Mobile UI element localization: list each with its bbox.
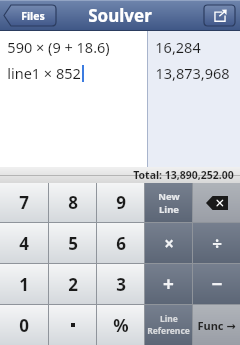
staticText: +	[163, 271, 174, 297]
button[interactable]: Func →	[193, 305, 240, 345]
staticText: 8	[68, 191, 78, 214]
button[interactable]: Backspace	[193, 183, 240, 222]
staticText: %	[113, 314, 129, 337]
button[interactable]: 0	[0, 305, 48, 345]
staticText: ÷	[212, 232, 222, 255]
button[interactable]: 9	[97, 183, 144, 222]
staticText: 1	[19, 273, 29, 296]
button[interactable]: 3	[97, 264, 144, 304]
button[interactable]: 7	[0, 183, 48, 222]
staticText: New	[158, 190, 180, 203]
staticText: ×	[164, 232, 174, 255]
button[interactable]: 4	[0, 223, 48, 263]
staticText: 590 × (9 + 18.6)	[7, 37, 110, 57]
button[interactable]: 2	[49, 264, 96, 304]
button[interactable]: Minus	[193, 264, 240, 304]
button[interactable]: Multiply	[145, 223, 192, 263]
staticText: 16,284	[155, 37, 201, 57]
staticText: 9	[116, 191, 126, 214]
staticText: Line	[159, 203, 179, 216]
staticText: Files	[21, 9, 45, 23]
staticText: 7	[19, 191, 29, 214]
staticText: −	[211, 271, 223, 297]
staticText: Total: 13,890,252.00	[133, 168, 234, 182]
button[interactable]: 8	[49, 183, 96, 222]
button[interactable]: Share	[204, 5, 235, 26]
button[interactable]: Plus	[145, 264, 192, 304]
button[interactable]: %	[97, 305, 144, 345]
staticText: Line	[160, 313, 178, 325]
staticText: 4	[19, 232, 29, 255]
staticText: 6	[116, 232, 126, 255]
staticText: 3	[116, 273, 126, 296]
button[interactable]: 1	[0, 264, 48, 304]
button[interactable]: Line	[145, 305, 192, 345]
button[interactable]: Files	[4, 5, 56, 26]
button[interactable]: Divide	[193, 223, 240, 263]
staticText: Func →	[197, 318, 236, 333]
staticText: line1 × 852	[7, 63, 81, 83]
staticText: 0	[19, 314, 29, 337]
staticText: 5	[68, 232, 78, 255]
staticText: Soulver	[88, 4, 152, 27]
button[interactable]: 5	[49, 223, 96, 263]
staticText: 2	[68, 273, 78, 296]
staticText: 13,873,968	[155, 63, 230, 83]
button[interactable]: 6	[97, 223, 144, 263]
staticText: Reference	[147, 325, 190, 337]
button[interactable]	[49, 305, 96, 345]
button[interactable]: New	[145, 183, 192, 222]
